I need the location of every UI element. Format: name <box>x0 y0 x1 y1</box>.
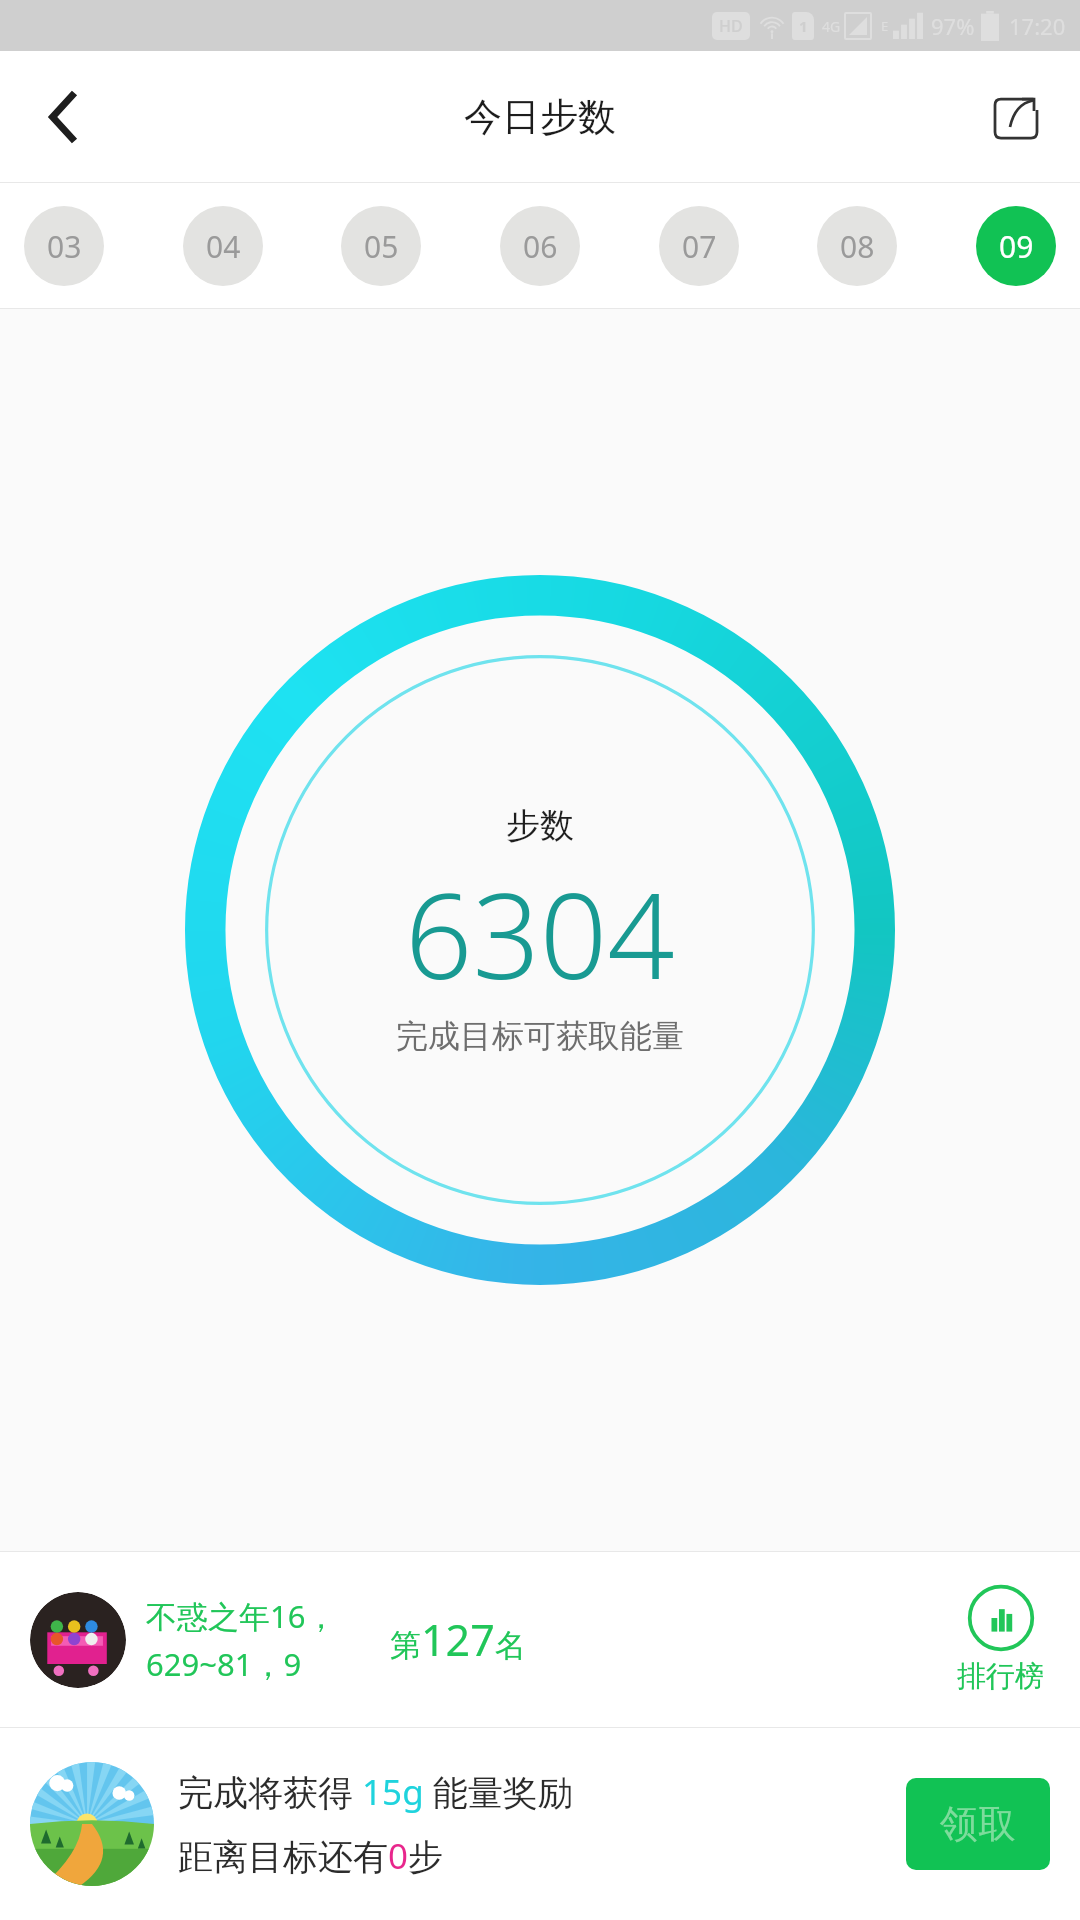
button[interactable]: Share <box>978 79 1054 155</box>
staticText: 4G <box>822 17 841 36</box>
button[interactable]: 06 <box>500 206 580 286</box>
staticText: 629~81，9 <box>146 1643 302 1685</box>
staticText: 6304 <box>405 853 675 1014</box>
button[interactable]: 领取 <box>906 1778 1050 1870</box>
staticText: 17:20 <box>1009 11 1066 41</box>
staticText: 完成目标可获取能量 <box>396 1016 684 1056</box>
staticText: 04 <box>206 226 241 267</box>
button[interactable]: 03 <box>24 206 104 286</box>
staticText: 距离目标还有0步 <box>178 1832 444 1880</box>
staticText: 步数 <box>506 804 574 847</box>
button[interactable]: 05 <box>341 206 421 286</box>
staticText: 1 <box>799 16 808 36</box>
staticText: 今日步数 <box>464 93 616 141</box>
staticText: 05 <box>364 226 399 267</box>
button[interactable]: 04 <box>183 206 263 286</box>
staticText: 09 <box>999 226 1034 267</box>
staticText: 领取 <box>940 1800 1016 1848</box>
staticText: 06 <box>523 226 558 267</box>
staticText: 03 <box>47 226 82 267</box>
staticText: 08 <box>840 226 875 267</box>
button[interactable]: 不惑之年16， <box>0 1552 1080 1727</box>
button[interactable]: 08 <box>817 206 897 286</box>
button[interactable]: 排行榜 <box>951 1584 1050 1695</box>
button[interactable]: 09 <box>976 206 1056 286</box>
staticText: HD <box>719 15 743 37</box>
button[interactable]: Back <box>26 79 102 155</box>
staticText: E <box>881 17 889 35</box>
staticText: 第127名 <box>390 1610 526 1669</box>
staticText: 完成将获得 15g 能量奖励 <box>178 1768 573 1816</box>
button[interactable]: 07 <box>659 206 739 286</box>
staticText: 07 <box>682 226 717 267</box>
staticText: 排行榜 <box>957 1658 1044 1695</box>
staticText: 97% <box>931 11 975 41</box>
staticText: 不惑之年16， <box>146 1595 337 1637</box>
